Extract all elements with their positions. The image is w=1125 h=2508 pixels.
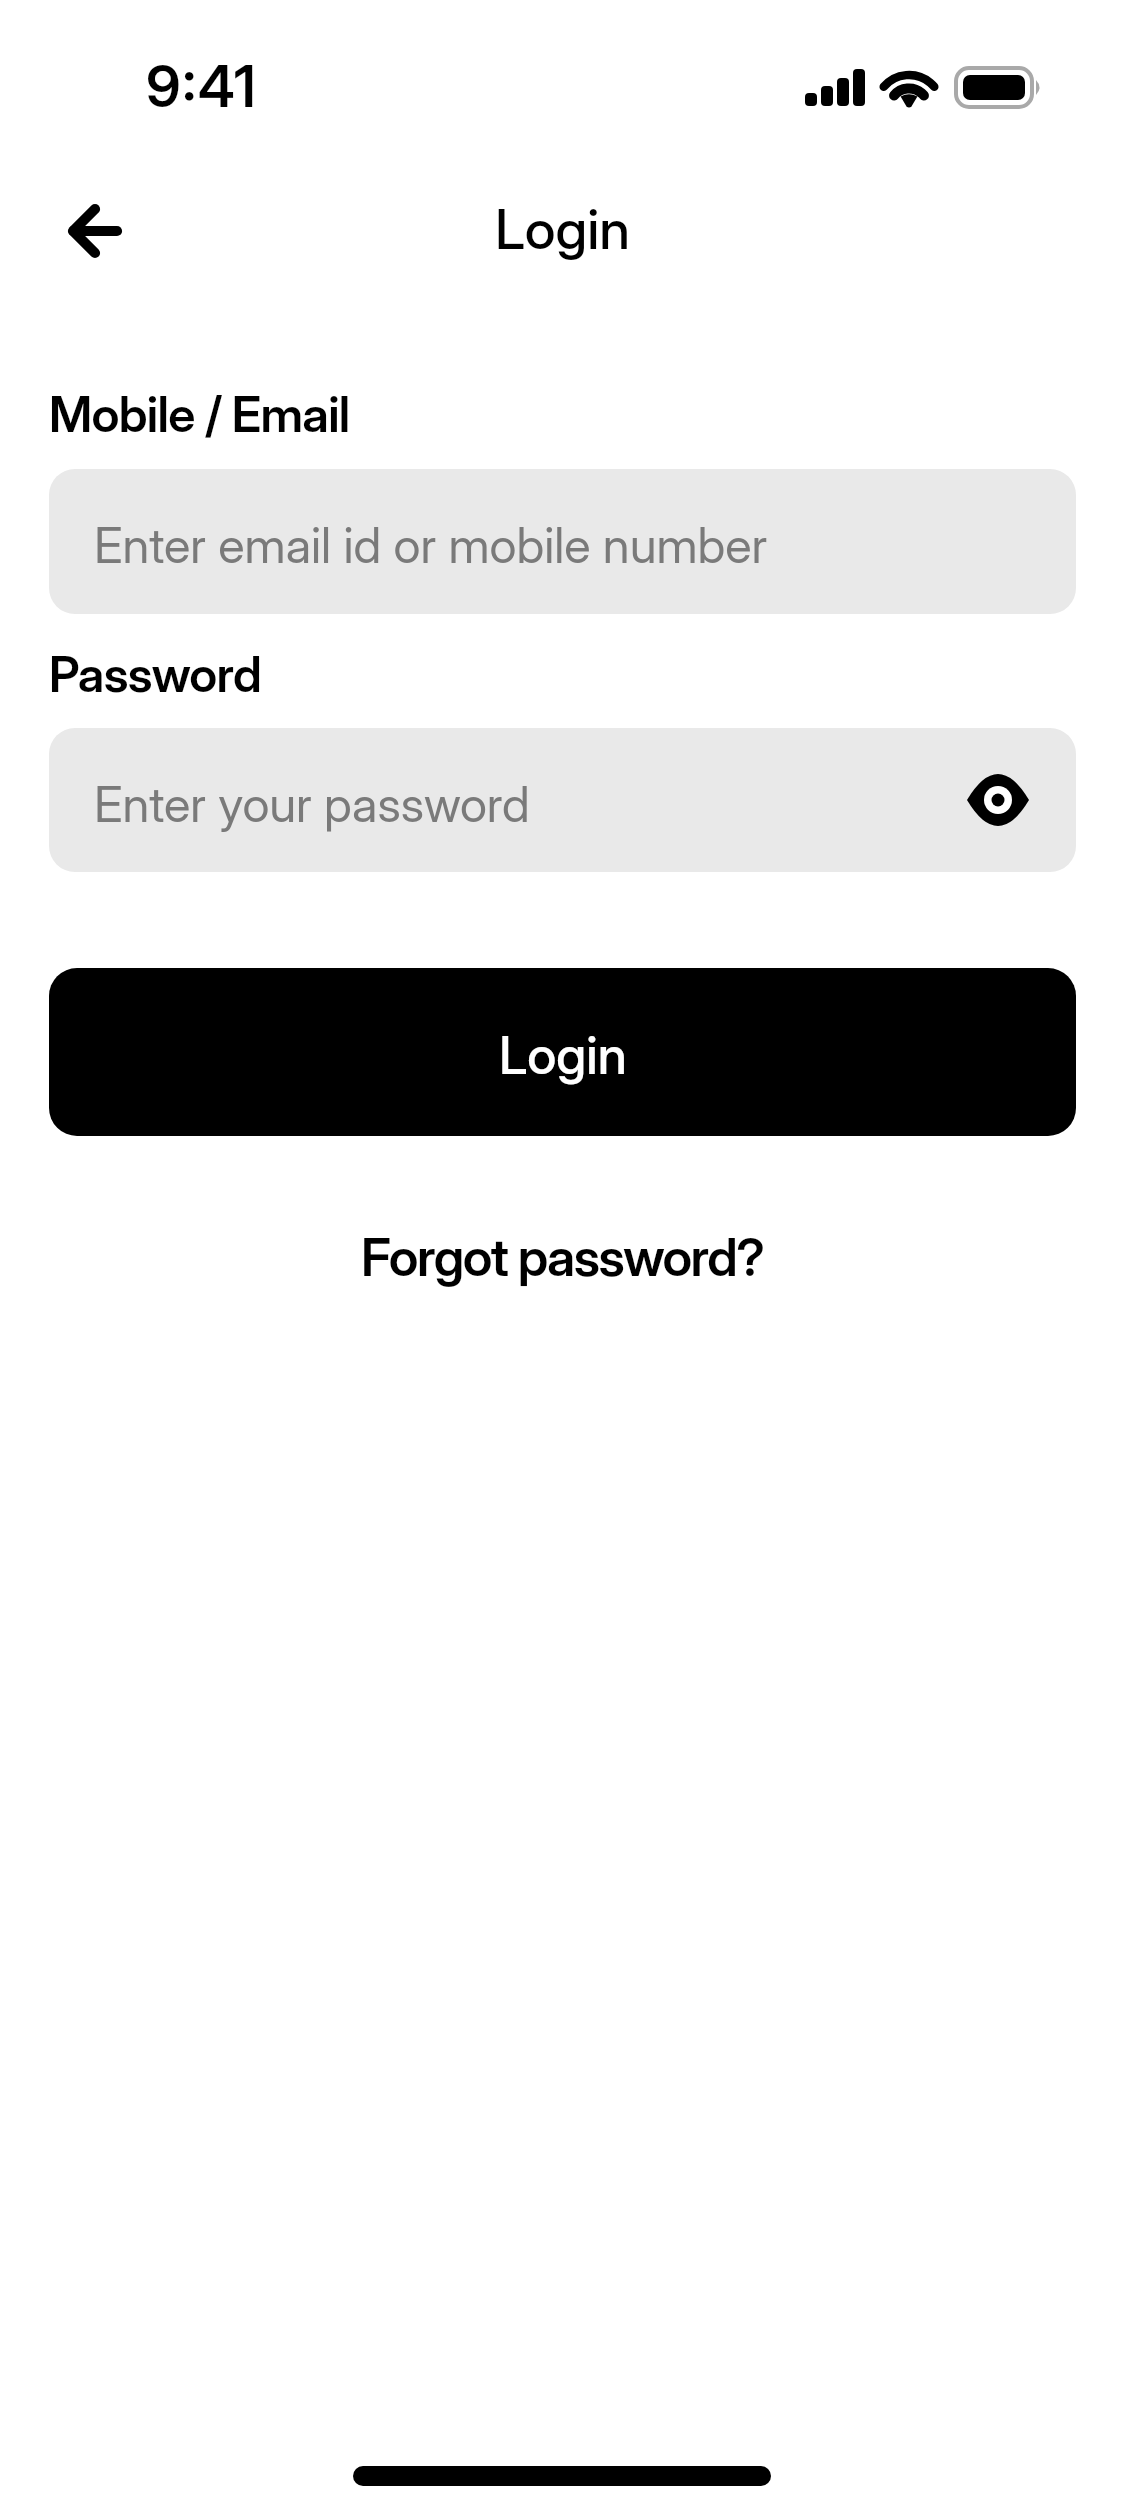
button[interactable]: Enter email id or mobile number <box>49 469 1076 614</box>
staticText: Password <box>49 645 262 704</box>
button[interactable] <box>967 769 1029 831</box>
staticText: 9:41 <box>146 52 258 121</box>
button[interactable]: Enter your password <box>49 728 1076 872</box>
staticText: Login <box>499 1024 627 1087</box>
button[interactable]: Forgot password? <box>361 1226 764 1289</box>
staticText: Enter email id or mobile number <box>94 516 768 575</box>
staticText: Enter your password <box>94 775 530 834</box>
staticText: Mobile / Email <box>49 385 350 444</box>
staticText: Login <box>0 196 1125 263</box>
button[interactable] <box>49 185 141 277</box>
button[interactable]: Login <box>49 968 1076 1136</box>
